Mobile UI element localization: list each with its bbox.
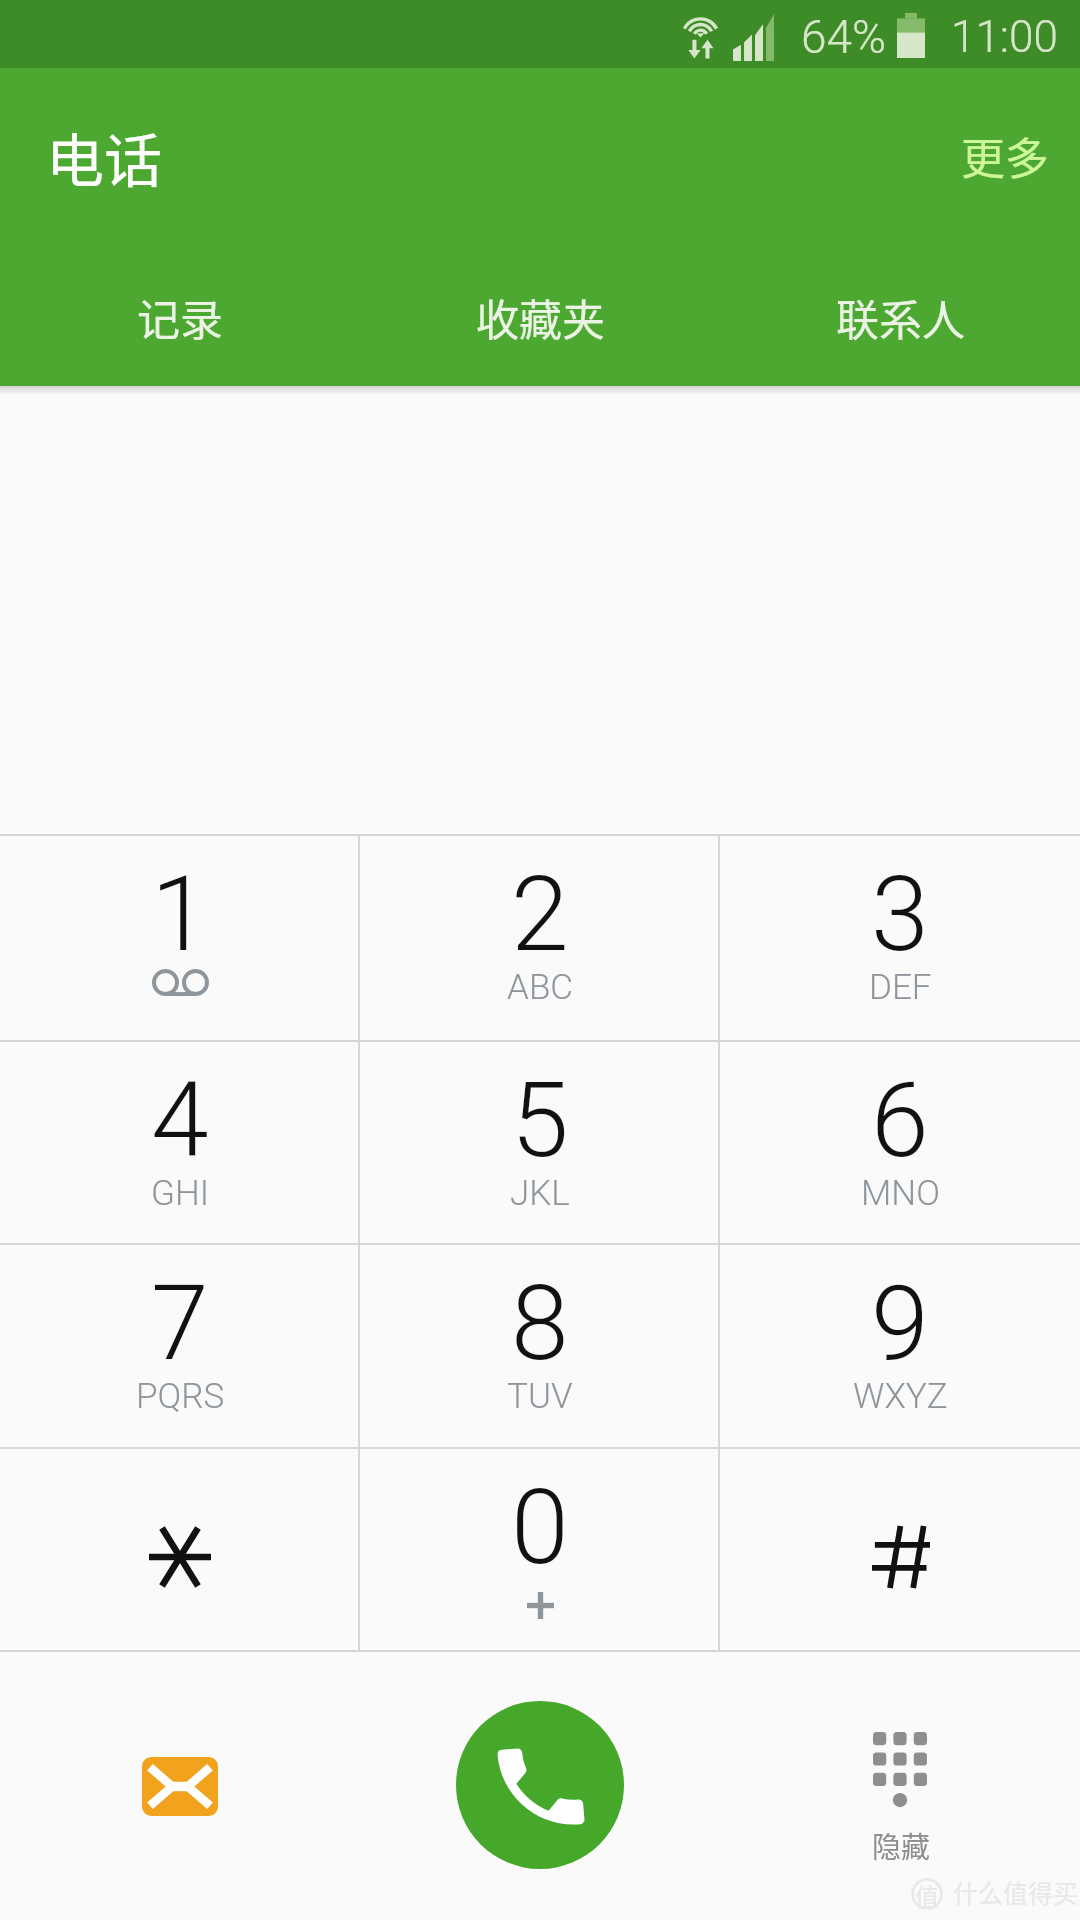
button[interactable]: 8 [360,1245,720,1447]
staticText: 4 [151,1060,209,1182]
staticText: 0 [511,1467,569,1589]
staticText: 11:00 [951,11,1058,63]
button[interactable]: 更多 [930,106,1080,206]
staticText: 7 [151,1263,209,1385]
staticText: WXYZ [853,1376,948,1417]
staticText: JKL [510,1173,570,1214]
staticText: 什么值得买 [953,1874,1079,1910]
button[interactable] [0,1449,360,1650]
button[interactable]: Send message [110,1716,250,1856]
button[interactable]: 2 [360,836,720,1040]
staticText: 64% [801,10,887,64]
button[interactable]: 联系人 [720,254,1080,386]
button[interactable]: 9 [720,1245,1080,1447]
button[interactable]: 5 [360,1042,720,1243]
staticText: 隐藏 [872,1824,931,1866]
staticText: 联系人 [836,286,965,348]
staticText: 6 [871,1060,929,1182]
button[interactable]: 4 [0,1042,360,1243]
button[interactable]: 6 [720,1042,1080,1243]
staticText: 更多 [961,124,1049,188]
staticText: PQRS [136,1376,225,1417]
staticText: MNO [861,1173,940,1214]
button[interactable] [720,1449,1080,1650]
button[interactable]: 收藏夹 [360,254,720,386]
staticText: 5 [511,1060,569,1182]
staticText: 1 [151,854,209,976]
staticText: 值 [915,1878,939,1910]
staticText: 8 [511,1263,569,1385]
staticText: 9 [871,1263,929,1385]
staticText: DEF [869,967,932,1008]
staticText: 收藏夹 [476,286,605,348]
button[interactable]: Call [456,1701,624,1869]
button[interactable]: 3 [720,836,1080,1040]
button[interactable]: 0 [360,1449,720,1650]
button[interactable]: Hide keypad [833,1682,967,1862]
staticText: 2 [511,854,569,976]
button[interactable]: 7 [0,1245,360,1447]
staticText: ABC [507,967,574,1008]
staticText: TUV [507,1376,573,1417]
button[interactable]: 记录 [0,254,360,386]
staticText: GHI [151,1173,210,1214]
staticText: 记录 [137,286,223,348]
staticText: 3 [871,854,929,976]
staticText: 电话 [46,115,163,199]
button[interactable]: 1 [0,836,360,1040]
